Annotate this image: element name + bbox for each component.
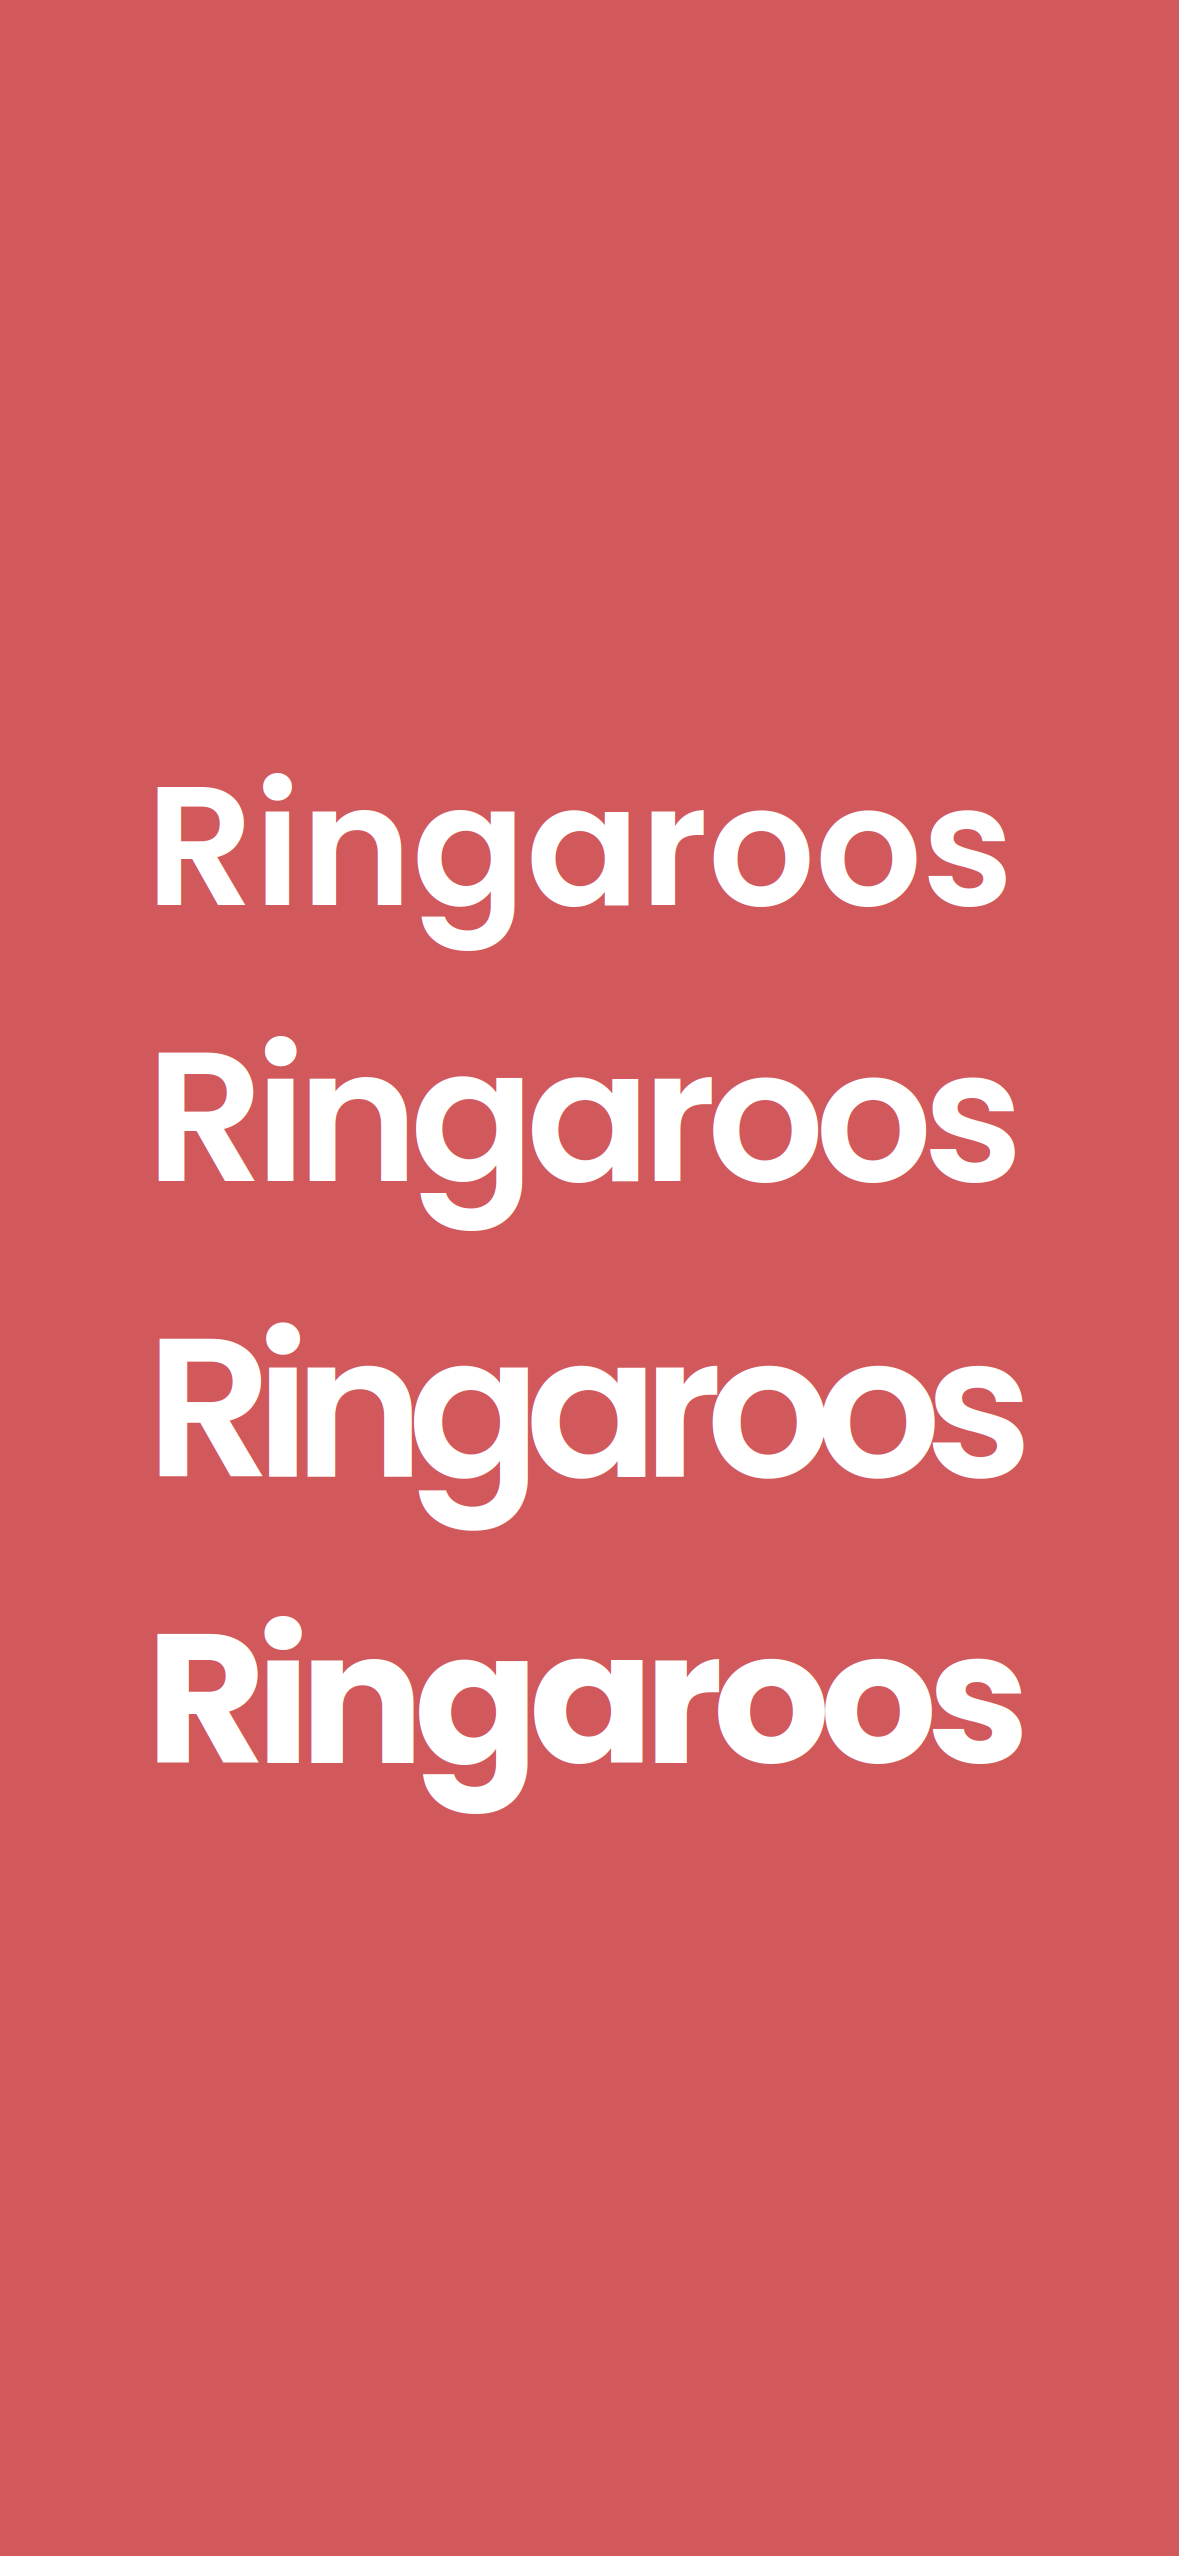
staticText: Ringaroos	[146, 1269, 1033, 1546]
staticText: Ringaroos	[146, 1570, 1030, 1827]
staticText: Ringaroos	[146, 988, 1023, 1245]
staticText: Ringaroos	[146, 729, 1014, 964]
